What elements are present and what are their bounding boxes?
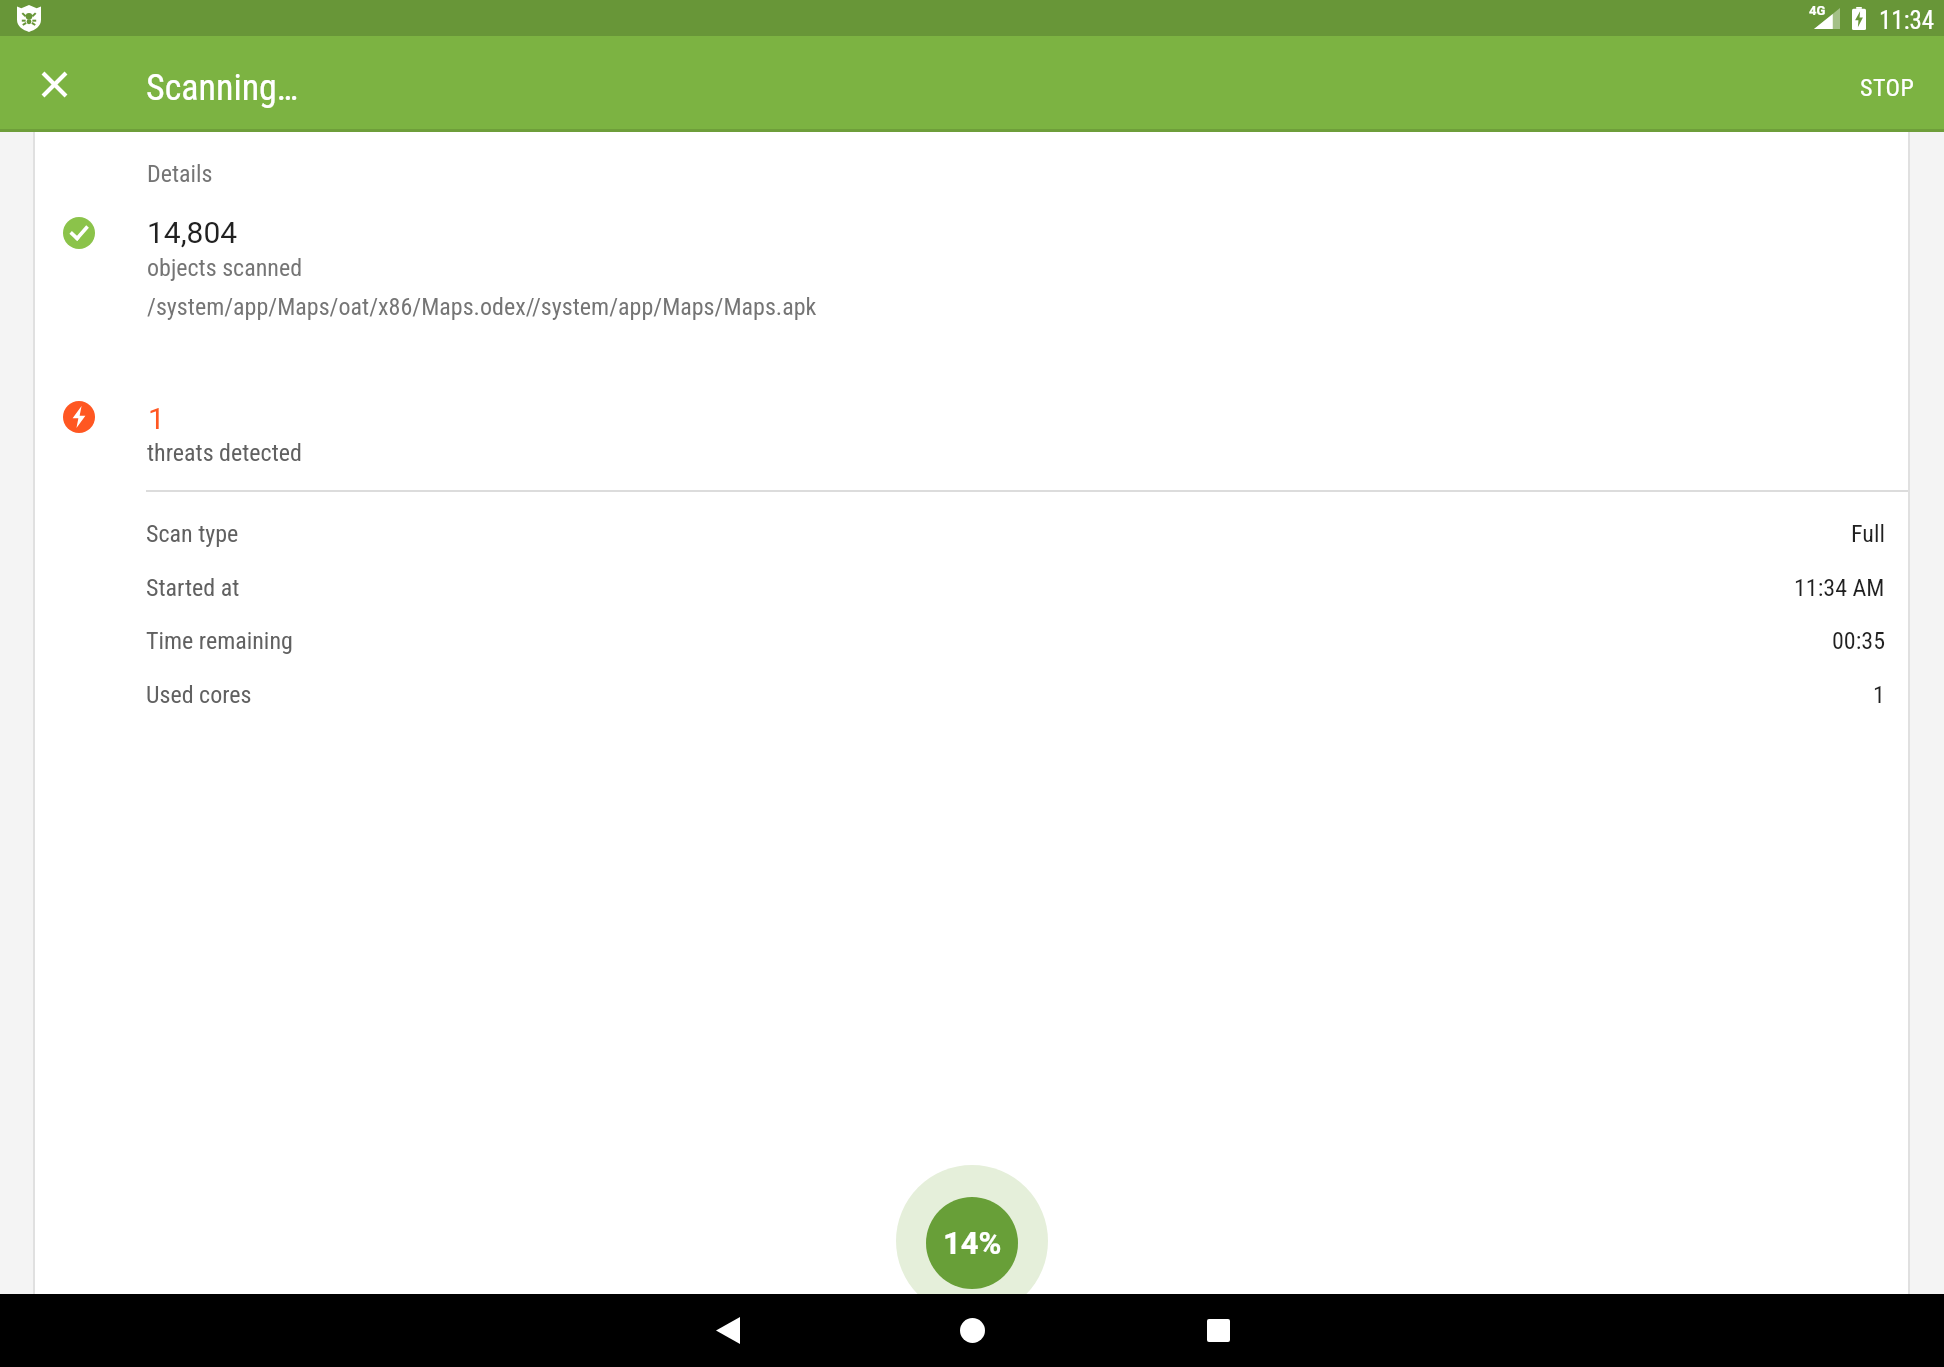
staticText: 4G: [1809, 3, 1826, 18]
staticText: 1: [1873, 681, 1885, 709]
button[interactable]: Started at: [146, 572, 1885, 604]
button[interactable]: Time remaining: [146, 625, 1885, 657]
staticText: Details: [147, 160, 213, 188]
staticText: /system/app/Maps/oat/x86/Maps.odex//syst…: [147, 293, 817, 321]
button[interactable]: STOP: [1834, 58, 1940, 118]
button[interactable]: Used cores: [146, 679, 1885, 711]
staticText: 14,804: [147, 215, 238, 250]
staticText: threats detected: [147, 439, 302, 467]
staticText: 14%: [943, 1225, 1002, 1261]
staticText: 11:34: [1879, 6, 1935, 35]
staticText: Full: [1851, 520, 1885, 548]
button[interactable]: Scan type: [146, 518, 1885, 550]
button[interactable]: [936, 1294, 1008, 1367]
staticText: 11:34 AM: [1794, 574, 1885, 602]
staticText: Used cores: [146, 681, 252, 709]
staticText: Started at: [146, 574, 240, 602]
staticText: 00:35: [1832, 627, 1885, 655]
staticText: 1: [148, 401, 165, 436]
button[interactable]: [30, 60, 78, 108]
staticText: STOP: [1860, 74, 1915, 102]
staticText: Time remaining: [146, 627, 293, 655]
staticText: Scanning…: [146, 67, 299, 109]
staticText: objects scanned: [147, 254, 303, 282]
button[interactable]: [1182, 1294, 1254, 1367]
button[interactable]: [692, 1294, 764, 1367]
staticText: Scan type: [146, 520, 239, 548]
